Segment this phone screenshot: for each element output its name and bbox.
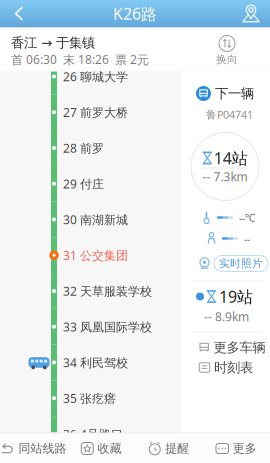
- button[interactable]: 换向: [206, 31, 248, 69]
- button[interactable]: 27 前罗大桥: [0, 94, 181, 130]
- staticText: 32 天草服装学校: [63, 283, 152, 299]
- button[interactable]: 实时照片: [199, 254, 268, 272]
- button[interactable]: 更多: [202, 433, 270, 463]
- staticText: 34 利民驾校: [63, 354, 128, 370]
- staticText: 27 前罗大桥: [63, 104, 128, 120]
- staticText: K26路: [113, 3, 157, 24]
- staticText: 31 公交集团: [63, 247, 128, 263]
- button[interactable]: 同站线路: [0, 433, 67, 463]
- button[interactable]: 32 天草服装学校: [0, 273, 181, 309]
- staticText: 更多: [233, 441, 257, 456]
- button[interactable]: 34 利民驾校: [0, 345, 181, 380]
- staticText: --: [244, 231, 250, 246]
- staticText: 下一辆: [215, 85, 254, 102]
- button[interactable]: 时刻表: [199, 357, 270, 377]
- button[interactable]: 提醒: [135, 433, 202, 463]
- staticText: -- 7.3km: [202, 168, 247, 184]
- staticText: 33 凤凰国际学校: [63, 319, 152, 335]
- staticText: 29 付庄: [63, 176, 104, 192]
- button[interactable]: 28 前罗: [0, 130, 181, 166]
- staticText: 时刻表: [214, 359, 253, 376]
- staticText: 实时照片: [219, 257, 263, 270]
- staticText: 19站: [219, 286, 253, 307]
- staticText: 14站: [214, 147, 248, 169]
- staticText: 香江 → 于集镇: [11, 34, 95, 51]
- staticText: 28 前罗: [63, 140, 104, 156]
- staticText: 更多车辆: [213, 339, 265, 356]
- staticText: 首 06:30 末 18:26 票 2元: [11, 51, 149, 67]
- button[interactable]: 更多车辆: [199, 337, 270, 357]
- staticText: 同站线路: [18, 441, 66, 456]
- button[interactable]: 31 公交集团: [0, 237, 181, 273]
- button[interactable]: Back: [0, 0, 38, 27]
- button[interactable]: Map: [232, 0, 270, 27]
- button[interactable]: 30 南湖新城: [0, 202, 181, 237]
- button[interactable]: 29 付庄: [0, 166, 181, 202]
- button[interactable]: 收藏: [67, 433, 135, 463]
- staticText: -- 8.9km: [204, 308, 249, 324]
- staticText: 鲁P04741: [206, 107, 253, 122]
- staticText: 收藏: [97, 441, 121, 456]
- button[interactable]: 36 4号路口: [0, 416, 181, 452]
- staticText: 35 张疙瘩: [63, 390, 116, 406]
- staticText: 提醒: [165, 441, 189, 456]
- staticText: 30 南湖新城: [63, 211, 128, 227]
- staticText: 26 聊城大学: [63, 68, 128, 84]
- button[interactable]: 35 张疙瘩: [0, 380, 181, 416]
- button[interactable]: 26 聊城大学: [0, 59, 181, 94]
- staticText: --℃: [239, 210, 256, 225]
- staticText: 换向: [216, 53, 238, 66]
- staticText: 36 4号路口: [63, 426, 123, 442]
- button[interactable]: 33 凤凰国际学校: [0, 309, 181, 345]
